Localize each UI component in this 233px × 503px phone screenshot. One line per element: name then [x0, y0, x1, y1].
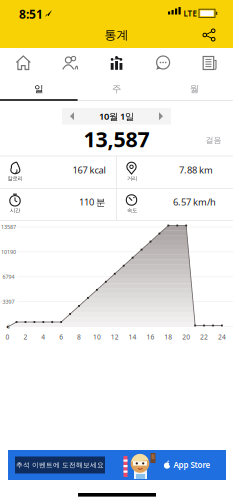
staticText: 일 [34, 83, 43, 95]
staticText: 2 [23, 333, 27, 341]
button[interactable]: 채팅 [140, 50, 186, 76]
button[interactable]: 월 [156, 79, 233, 99]
staticText: 18 [164, 333, 172, 341]
staticText: LTE [183, 8, 196, 19]
staticText: 13587 [1, 223, 16, 231]
staticText: 167 kcal [72, 164, 105, 176]
staticText: 통계 [104, 28, 128, 42]
staticText: 월 [190, 83, 199, 95]
staticText: 걸음 [205, 135, 221, 145]
staticText: 4 [41, 333, 45, 341]
staticText: 0 [6, 333, 10, 341]
staticText: 6 [59, 333, 63, 341]
staticText: 13,587 [83, 125, 149, 153]
staticText: 칼로리 [7, 175, 22, 182]
staticText: 20 [182, 333, 190, 341]
staticText: 12 [111, 333, 119, 341]
staticText: 속도 [127, 207, 137, 214]
staticText: 6794 [2, 273, 14, 280]
staticText: 10 [93, 333, 101, 341]
button[interactable]: 일 [0, 79, 77, 99]
staticText: 16 [146, 333, 154, 341]
staticText: 10월 1일 [99, 110, 134, 122]
staticText: 10190 [1, 248, 16, 255]
staticText: 0 [7, 323, 10, 330]
staticText: 시간 [10, 207, 20, 214]
staticText: 110 분 [79, 196, 105, 208]
button[interactable]: 홈 [0, 50, 46, 76]
button[interactable]: 친구 [47, 50, 93, 76]
staticText: 3397 [2, 298, 14, 305]
staticText: 8 [77, 333, 81, 341]
staticText: 주 [112, 83, 121, 95]
staticText: 14 [129, 333, 137, 341]
button[interactable]: 추석 이벤트에 도전해보세요 App Store [8, 450, 226, 480]
staticText: 24 [218, 333, 226, 341]
staticText: 22 [200, 333, 208, 341]
button[interactable]: 뉴스 [187, 50, 233, 76]
button[interactable]: 주 [78, 79, 155, 99]
button[interactable]: 다음 날짜 [153, 108, 169, 124]
staticText: 7.88 km [179, 164, 213, 176]
button[interactable]: 공유 [198, 24, 220, 46]
staticText: 6.57 km/h [173, 196, 216, 208]
staticText: 거리 [127, 175, 137, 182]
button[interactable]: 이전 날짜 [64, 108, 80, 124]
button[interactable]: 통계 [93, 50, 139, 76]
staticText: 8:51 [19, 6, 43, 22]
staticText: App Store [173, 460, 210, 470]
staticText: 추석 이벤트에 도전해보세요 [16, 461, 104, 469]
